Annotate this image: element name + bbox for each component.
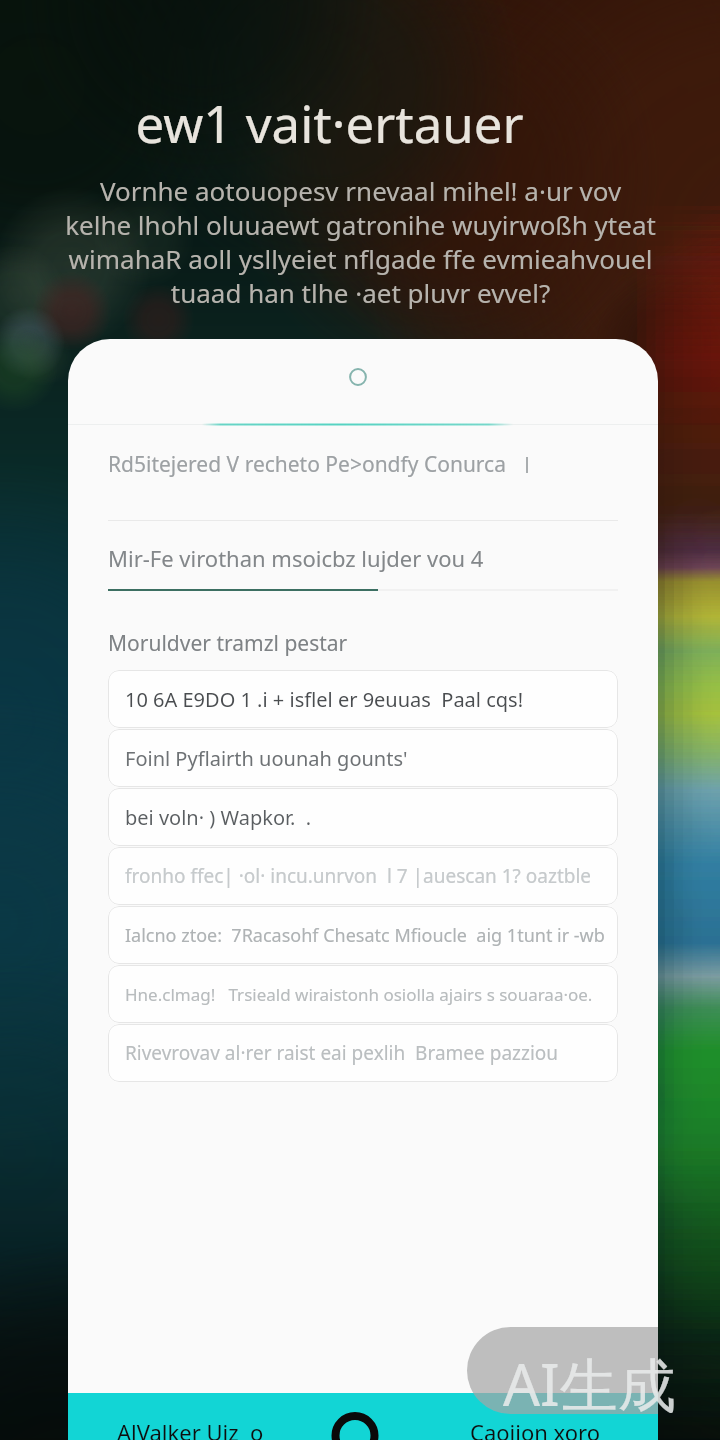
staticText: Mir-Fe virothan msoicbz lujder vou 4 xyxy=(108,543,484,573)
button[interactable]: bei voln· ) Wapkor. . xyxy=(108,788,618,846)
staticText: Foinl Pyflairth uounah gounts' xyxy=(125,745,408,772)
button[interactable]: Rd5itejered V recheto Pe>ondfy Conurca xyxy=(68,426,658,521)
staticText: Caojjon xoro xyxy=(470,1417,600,1440)
button[interactable]: Mir-Fe virothan msoicbz lujder vou 4 xyxy=(68,521,658,591)
button[interactable]: 10 6A E9DO 1 .i + isflel er 9euuas Paal … xyxy=(108,670,618,728)
staticText: AlValker Uiz o xyxy=(117,1417,264,1440)
button[interactable]: Hne.clmag! Trsieald wiraistonh osiolla a… xyxy=(108,965,618,1023)
staticText: Rivevrovav al·rer raist eai pexlih Brame… xyxy=(125,1040,559,1066)
staticText: Rd5itejered V recheto Pe>ondfy Conurca xyxy=(108,450,506,479)
staticText: Vornhe aotouopesv rnevaal mihel! a·ur vo… xyxy=(65,173,656,310)
staticText: 10 6A E9DO 1 .i + isflel er 9euuas Paal … xyxy=(125,686,524,713)
staticText: ew1 vait·ertauer xyxy=(135,88,524,157)
staticText: Moruldver tramzl pestar xyxy=(108,629,348,658)
staticText: fronho ffec| ·ol· incu.unrvon l 7 |auesc… xyxy=(125,863,592,889)
button[interactable]: Home xyxy=(329,1412,381,1440)
button[interactable]: Rivevrovav al·rer raist eai pexlih Brame… xyxy=(108,1024,618,1082)
button[interactable]: Foinl Pyflairth uounah gounts' xyxy=(108,729,618,787)
button[interactable]: Caojjon xoro xyxy=(445,1393,625,1440)
button[interactable]: Ialcno ztoe: 7Racasohf Chesatc Mfioucle … xyxy=(108,906,618,964)
staticText: Hne.clmag! Trsieald wiraistonh osiolla a… xyxy=(125,983,593,1006)
staticText: AI生成 xyxy=(503,1344,676,1423)
staticText: Ialcno ztoe: 7Racasohf Chesatc Mfioucle … xyxy=(125,923,605,948)
button[interactable]: AlValker Uiz o xyxy=(100,1393,280,1440)
button[interactable]: fronho ffec| ·ol· incu.unrvon l 7 |auesc… xyxy=(108,847,618,905)
staticText: bei voln· ) Wapkor. . xyxy=(125,804,312,831)
button[interactable]: Profile xyxy=(345,364,371,390)
